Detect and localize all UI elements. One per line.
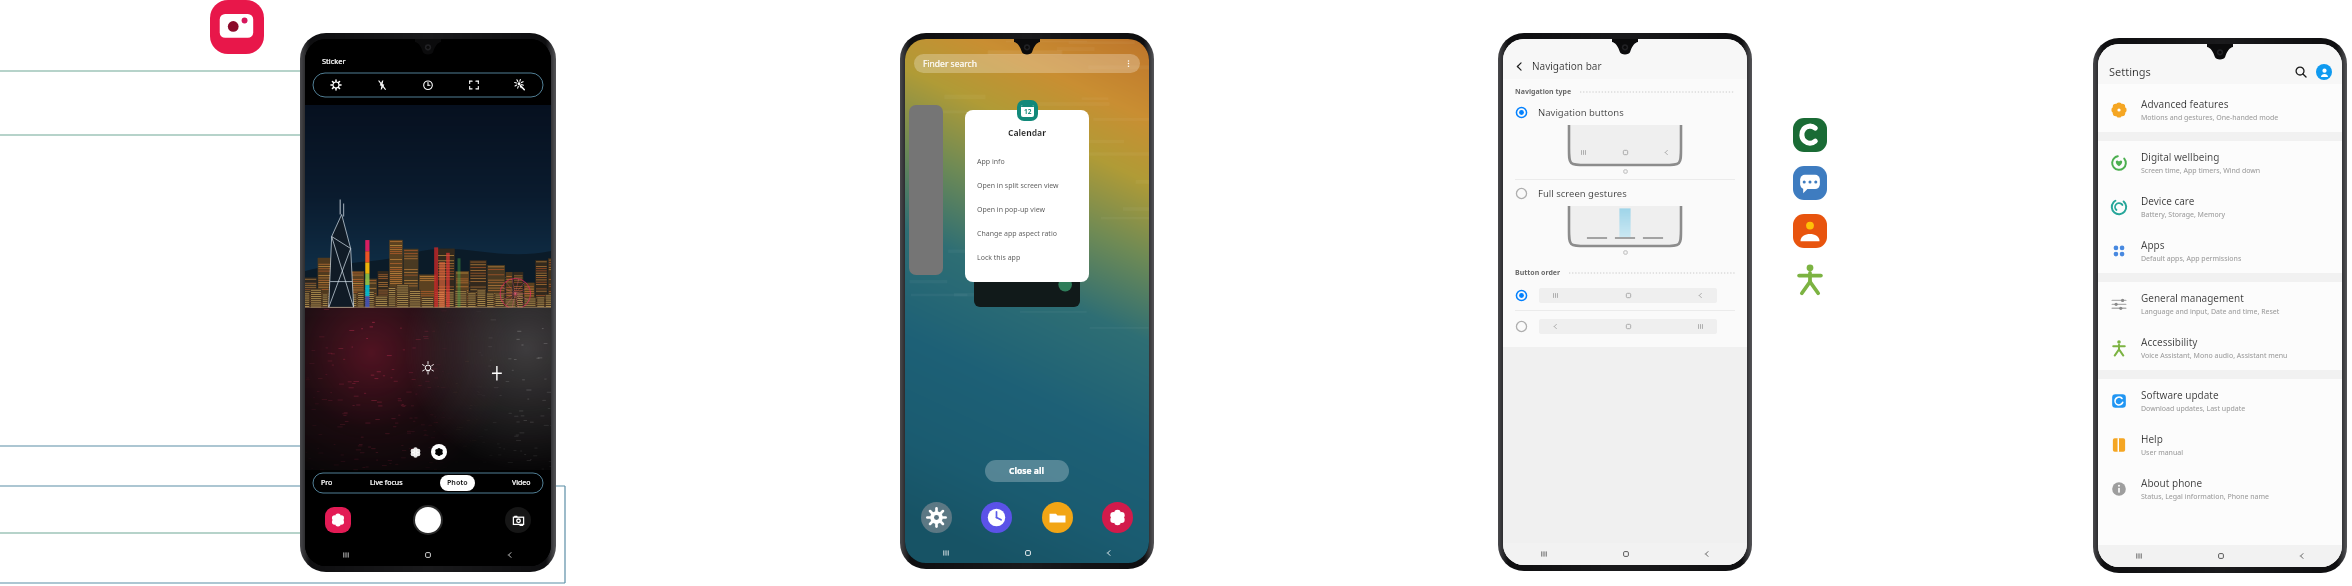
button[interactable]: Digital wellbeing <box>2098 141 2342 185</box>
staticText: Status, Legal information, Phone name <box>2141 492 2270 502</box>
button[interactable]: Accessibility <box>2098 326 2342 370</box>
button[interactable]: Navigation bar <box>1513 59 1602 73</box>
button[interactable]: Open in pop-up view <box>965 198 1089 222</box>
button[interactable]: My Files <box>1042 502 1073 533</box>
button[interactable]: Device care <box>2098 185 2342 229</box>
button[interactable] <box>974 227 1080 307</box>
button[interactable]: Lock this app <box>965 246 1089 270</box>
button[interactable]: General management <box>2098 282 2342 326</box>
button[interactable]: Live focus <box>370 478 403 488</box>
button[interactable]: AR Emoji <box>1102 502 1133 533</box>
button[interactable]: App <box>1793 118 1827 152</box>
staticText: Navigation buttons <box>1538 106 1624 119</box>
staticText: Default apps, App permissions <box>2141 254 2242 264</box>
staticText: Photo <box>447 478 468 488</box>
staticText: Voice Assistant, Mono audio, Assistant m… <box>2141 351 2288 361</box>
staticText: Open in pop-up view <box>977 205 1046 215</box>
button[interactable]: AR Emoji <box>325 507 351 533</box>
button[interactable]: back <box>1068 543 1149 563</box>
staticText: Navigation bar <box>1532 59 1602 73</box>
staticText: User manual <box>2141 448 2183 458</box>
staticText: Help <box>2141 432 2163 446</box>
button[interactable]: back <box>1666 543 1747 565</box>
button[interactable]: Calendar <box>1017 100 1038 121</box>
button[interactable]: recents <box>905 543 987 563</box>
button[interactable]: About phone <box>2098 467 2342 511</box>
button[interactable]: Close all <box>985 460 1069 482</box>
staticText: Digital wellbeing <box>2141 150 2220 164</box>
button[interactable]: Search <box>2293 64 2309 80</box>
button[interactable]: back <box>469 544 551 566</box>
button[interactable]: timer <box>405 73 451 97</box>
staticText: Change app aspect ratio <box>977 229 1057 239</box>
staticText: Language and input, Date and time, Reset <box>2141 307 2280 317</box>
staticText: Apps <box>2141 238 2165 252</box>
staticText: Button order <box>1515 268 1561 278</box>
button[interactable]: gear <box>313 73 359 97</box>
staticText: Battery, Storage, Memory <box>2141 210 2226 220</box>
staticText: General management <box>2141 291 2244 305</box>
button[interactable]: Clock <box>981 502 1012 533</box>
button[interactable] <box>1503 280 1747 310</box>
button[interactable]: wand <box>497 73 543 97</box>
button[interactable]: ratio <box>451 73 497 97</box>
button[interactable]: Pro <box>321 478 333 488</box>
button[interactable]: home <box>387 544 469 566</box>
button[interactable] <box>1503 311 1747 341</box>
button[interactable]: recents <box>1503 543 1585 565</box>
button[interactable] <box>909 105 943 275</box>
staticText: Lock this app <box>977 253 1021 263</box>
staticText: Close all <box>1009 465 1045 477</box>
staticText: Motions and gestures, One-handed mode <box>2141 113 2279 123</box>
button[interactable]: Full screen gestures <box>1503 180 1747 206</box>
staticText: Finder search <box>923 58 1124 70</box>
button[interactable]: flash <box>359 73 405 97</box>
staticText: About phone <box>2141 476 2203 490</box>
button[interactable]: Video <box>512 478 531 488</box>
staticText: App info <box>977 157 1005 167</box>
button[interactable]: Software update <box>2098 379 2342 423</box>
button[interactable]: Filter <box>431 444 447 460</box>
button[interactable]: home <box>1585 543 1666 565</box>
staticText: Software update <box>2141 388 2219 402</box>
button[interactable]: Photo <box>440 475 475 491</box>
button[interactable]: home <box>2180 545 2261 567</box>
button[interactable]: Effects <box>409 446 422 459</box>
staticText: Screen time, App timers, Wind down <box>2141 166 2261 176</box>
staticText: Navigation type <box>1515 87 1572 97</box>
staticText: Calendar <box>965 127 1089 139</box>
button[interactable]: App <box>1793 166 1827 200</box>
staticText: Accessibility <box>2141 335 2198 349</box>
button[interactable]: Apps <box>2098 229 2342 273</box>
staticText: Open in split screen view <box>977 181 1059 191</box>
button[interactable]: Settings <box>921 502 952 533</box>
button[interactable]: App <box>1793 214 1827 248</box>
button[interactable]: back <box>2261 545 2342 567</box>
button[interactable]: Change app aspect ratio <box>965 222 1089 246</box>
staticText: Download updates, Last update <box>2141 404 2246 414</box>
staticText: Settings <box>2109 64 2293 79</box>
button[interactable]: Navigation buttons <box>1503 99 1747 125</box>
button[interactable]: App info <box>965 150 1089 174</box>
button[interactable]: recents <box>305 544 387 566</box>
button[interactable]: Finder search <box>914 54 1140 73</box>
button[interactable]: Advanced features <box>2098 88 2342 132</box>
staticText: 12 <box>1024 107 1032 116</box>
staticText: Full screen gestures <box>1538 187 1627 200</box>
button[interactable]: Switch camera <box>505 507 531 533</box>
staticText: Device care <box>2141 194 2195 208</box>
button[interactable]: recents <box>2098 545 2180 567</box>
button[interactable]: Account <box>2316 64 2332 80</box>
staticText: Advanced features <box>2141 97 2229 111</box>
button[interactable]: Help <box>2098 423 2342 467</box>
button[interactable]: Shutter <box>415 507 441 533</box>
staticText: Sticker <box>322 56 346 66</box>
button[interactable]: Open in split screen view <box>965 174 1089 198</box>
button[interactable]: AR Emoji camera <box>210 0 264 54</box>
button[interactable]: home <box>987 543 1068 563</box>
